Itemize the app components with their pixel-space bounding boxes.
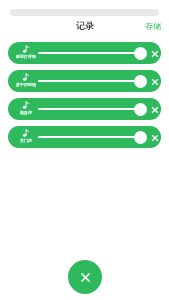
button[interactable]: Remove <box>148 75 161 88</box>
button[interactable]: Remove <box>148 131 161 144</box>
button[interactable]: 存储 <box>137 19 169 33</box>
button[interactable]: 翻身声 <box>8 98 161 120</box>
button[interactable]: 关门声 <box>8 126 161 148</box>
staticText: 关门声 <box>20 138 32 143</box>
staticText: 记录 <box>76 20 94 31</box>
button[interactable]: Volume slider <box>134 75 147 88</box>
button[interactable]: Remove <box>148 47 161 60</box>
button[interactable]: Remove <box>148 103 161 116</box>
button[interactable]: 睡觉打呼噜 <box>8 42 161 64</box>
button[interactable]: Volume slider <box>134 47 147 60</box>
button[interactable]: Volume slider <box>134 103 147 116</box>
button[interactable]: Close <box>68 260 102 294</box>
staticText: 睡觉打呼噜 <box>16 54 36 59</box>
button[interactable]: 梦中的呢喃 <box>8 70 161 92</box>
button[interactable]: Volume slider <box>134 131 147 144</box>
staticText: 翻身声 <box>20 110 32 115</box>
staticText: 梦中的呢喃 <box>16 82 36 87</box>
staticText: 存储 <box>145 21 161 31</box>
